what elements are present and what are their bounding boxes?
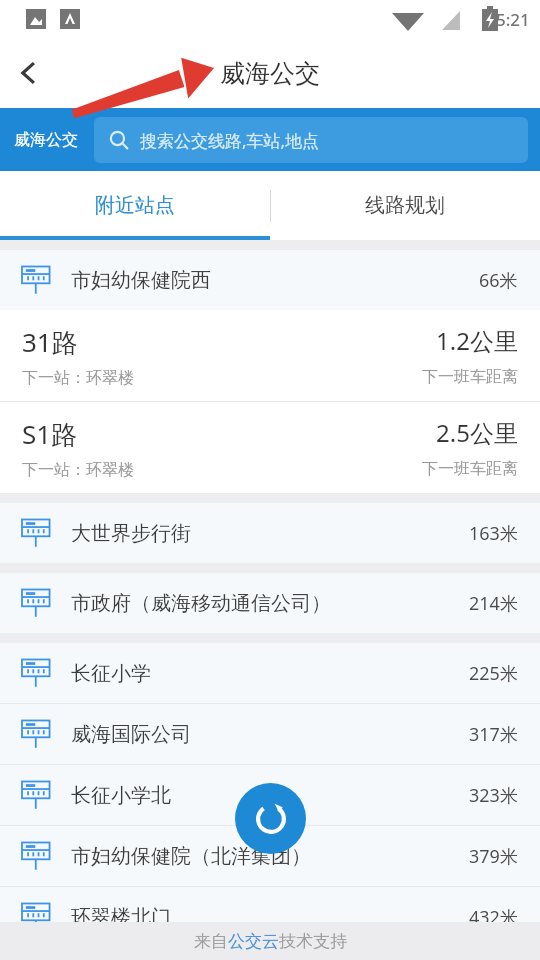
- button[interactable]: 31路: [0, 310, 540, 401]
- staticText: 威海公交: [220, 58, 320, 89]
- button[interactable]: 大世界步行街: [0, 503, 540, 563]
- button[interactable]: 市妇幼保健院西: [0, 250, 540, 310]
- button[interactable]: Refresh: [235, 783, 306, 854]
- button[interactable]: 威海国际公司: [0, 704, 540, 764]
- staticText: 225米: [469, 661, 518, 686]
- button[interactable]: 附近站点: [0, 171, 270, 240]
- staticText: 搜索公交线路,车站,地点: [140, 129, 320, 152]
- button[interactable]: Back: [0, 45, 56, 101]
- staticText: 威海公交: [14, 130, 78, 150]
- staticText: 323米: [469, 783, 518, 808]
- staticText: 下一班车距离: [422, 459, 518, 479]
- staticText: 附近站点: [95, 193, 175, 218]
- staticText: 威海国际公司: [71, 722, 469, 747]
- staticText: 长征小学北: [71, 783, 469, 808]
- button[interactable]: 线路规划: [270, 171, 540, 240]
- staticText: 下一班车距离: [422, 367, 518, 387]
- staticText: 432米: [469, 905, 518, 930]
- staticText: 市妇幼保健院西: [71, 268, 479, 293]
- staticText: S1路: [22, 416, 78, 452]
- button[interactable]: 市妇幼保健院（北洋集团）: [0, 826, 540, 886]
- staticText: 来自公交云技术支持: [194, 931, 347, 952]
- button[interactable]: S1路: [0, 402, 540, 493]
- button[interactable]: 长征小学北: [0, 765, 540, 825]
- staticText: 66米: [479, 268, 518, 293]
- staticText: 市政府（威海移动通信公司）: [71, 591, 469, 616]
- staticText: 5:21: [496, 8, 530, 31]
- button[interactable]: 环翠楼北门: [0, 887, 540, 947]
- button[interactable]: 长征小学: [0, 643, 540, 703]
- staticText: 379米: [469, 844, 518, 869]
- staticText: 市妇幼保健院（北洋集团）: [71, 844, 469, 869]
- staticText: 214米: [469, 591, 518, 616]
- button[interactable]: 威海公交: [12, 130, 80, 150]
- staticText: 长征小学: [71, 661, 469, 686]
- button[interactable]: 市政府（威海移动通信公司）: [0, 573, 540, 633]
- staticText: 大世界步行街: [71, 521, 469, 546]
- staticText: 线路规划: [365, 193, 445, 218]
- staticText: 2.5公里: [436, 416, 518, 449]
- button[interactable]: 搜索公交线路,车站,地点: [94, 117, 528, 163]
- staticText: 下一站：环翠楼: [22, 460, 134, 480]
- staticText: 317米: [469, 722, 518, 747]
- staticText: 163米: [469, 521, 518, 546]
- staticText: 31路: [22, 324, 78, 360]
- staticText: 下一站：环翠楼: [22, 368, 134, 388]
- staticText: 环翠楼北门: [71, 905, 469, 930]
- staticText: 1.2公里: [436, 324, 518, 357]
